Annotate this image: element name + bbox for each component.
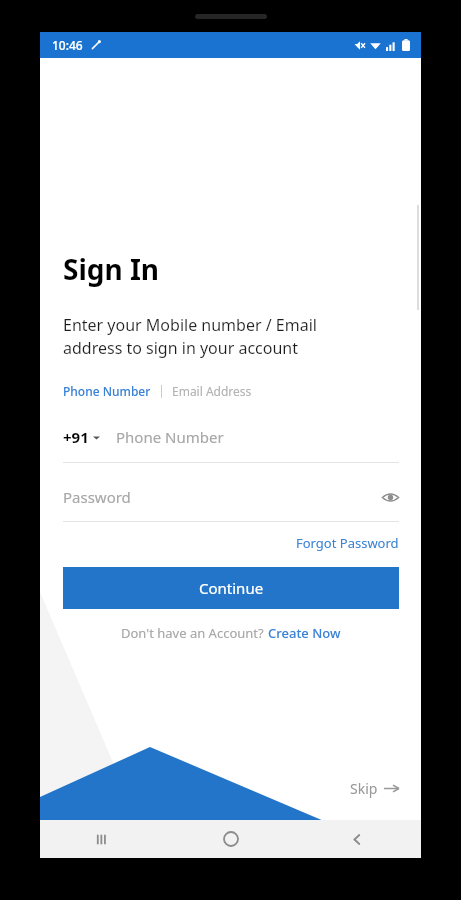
staticText: Create Now [268,624,341,642]
staticText: Sign In [63,250,160,288]
button[interactable]: Create Now [268,624,341,642]
staticText: 10:46 [52,37,83,53]
staticText: Password [63,487,131,507]
staticText: Enter your Mobile number / Email address… [63,314,317,359]
staticText: Email Address [172,383,252,399]
staticText: Phone Number [63,383,151,399]
staticText: +91 [63,427,89,447]
button[interactable]: Skip [350,779,399,798]
button[interactable]: Back [294,820,421,858]
staticText: Don't have an Account? [121,624,268,642]
button[interactable]: Continue [63,567,399,609]
other: Show password [382,489,399,506]
button[interactable]: Forgot Password [296,534,399,552]
button[interactable]: Password [63,484,399,522]
button[interactable]: +91 [63,423,399,463]
button[interactable]: Phone Number [63,383,151,399]
staticText: Phone Number [116,427,224,447]
staticText: Forgot Password [296,534,399,552]
button[interactable]: Email Address [172,383,252,399]
staticText: Skip [350,779,378,798]
button[interactable]: Recents [40,820,167,858]
staticText: Continue [199,578,264,598]
button[interactable]: Home [167,820,294,858]
